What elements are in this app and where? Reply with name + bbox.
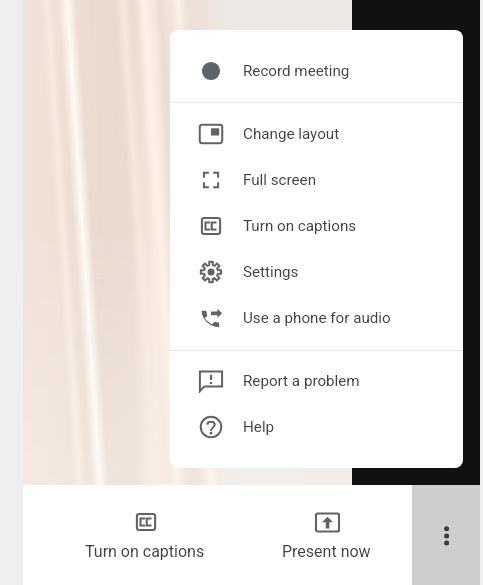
- button[interactable]: Full screen: [170, 157, 463, 203]
- staticText: Help: [243, 418, 275, 436]
- button[interactable]: More options: [412, 485, 480, 585]
- button[interactable]: Turn on captions: [170, 203, 463, 249]
- staticText: Use a phone for audio: [243, 309, 391, 327]
- button[interactable]: Use a phone for audio: [170, 295, 463, 341]
- button[interactable]: Turn on captions: [23, 485, 270, 585]
- button[interactable]: Settings: [170, 249, 463, 295]
- button[interactable]: Report a problem: [170, 358, 463, 404]
- button[interactable]: Present now: [270, 485, 412, 585]
- staticText: Turn on captions: [85, 542, 205, 561]
- staticText: Report a problem: [243, 372, 360, 390]
- staticText: Change layout: [243, 125, 340, 143]
- staticText: Present now: [282, 542, 371, 561]
- staticText: Record meeting: [243, 62, 350, 80]
- button[interactable]: Help: [170, 404, 463, 450]
- staticText: Turn on captions: [243, 217, 357, 235]
- button[interactable]: Record meeting: [170, 48, 463, 94]
- staticText: Full screen: [243, 171, 317, 189]
- button[interactable]: Change layout: [170, 111, 463, 157]
- staticText: Settings: [243, 263, 299, 281]
